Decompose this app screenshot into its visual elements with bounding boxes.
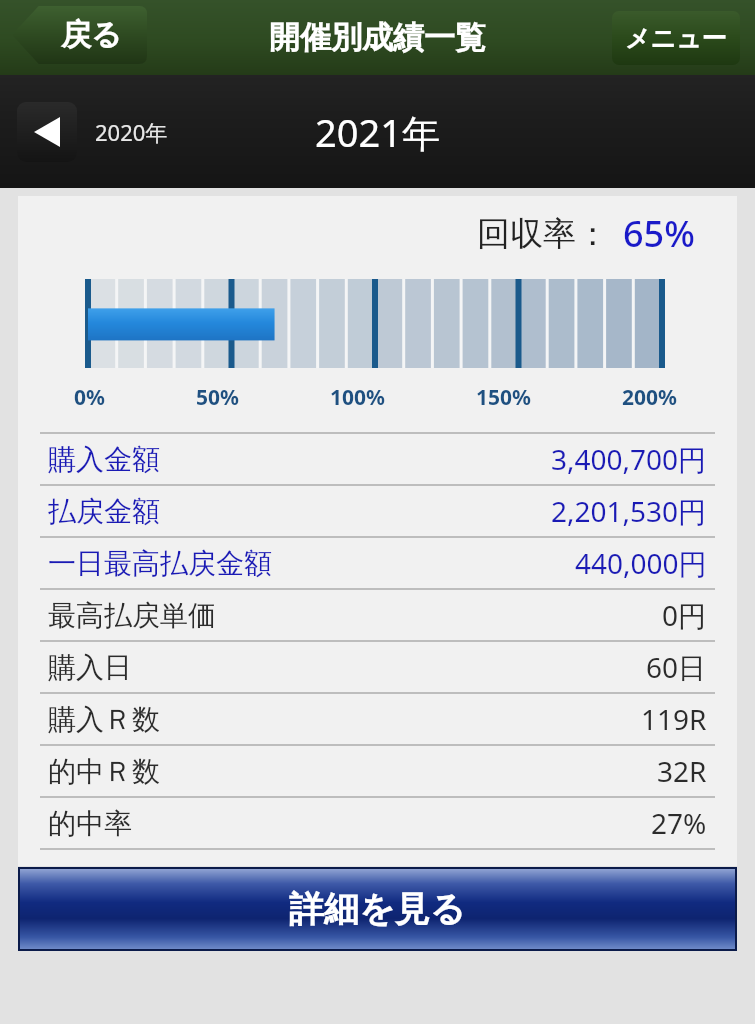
button[interactable]: 払戻金額	[18, 486, 737, 536]
staticText: 150%	[476, 383, 531, 412]
button[interactable]: 戻る	[12, 6, 147, 64]
button[interactable]: メニュー	[612, 11, 740, 65]
button[interactable]: 最高払戻単価	[18, 590, 737, 640]
button[interactable]: 購入金額	[18, 434, 737, 484]
staticText: 65%	[623, 209, 695, 258]
staticText: 開催別成績一覧	[269, 18, 486, 57]
staticText: 購入日	[48, 650, 132, 685]
staticText: 60日	[646, 648, 707, 686]
staticText: 2021年	[315, 106, 440, 158]
staticText: 3,400,700円	[551, 440, 707, 478]
staticText: 2,201,530円	[551, 492, 707, 530]
button[interactable]: 的中Ｒ数	[18, 746, 737, 796]
button[interactable]: 的中率	[18, 798, 737, 848]
button[interactable]: 購入Ｒ数	[18, 694, 737, 744]
staticText: 最高払戻単価	[48, 598, 216, 633]
staticText: 50%	[196, 383, 239, 412]
staticText: 購入金額	[48, 442, 160, 477]
staticText: 的中率	[48, 806, 132, 841]
staticText: 0円	[662, 596, 707, 634]
staticText: 一日最高払戻金額	[48, 546, 272, 581]
staticText: 200%	[622, 383, 677, 412]
staticText: 詳細を見る	[289, 887, 466, 931]
staticText: 2020年	[95, 117, 168, 147]
button[interactable]: 詳細を見る	[20, 869, 735, 949]
button[interactable]: 購入日	[18, 642, 737, 692]
button[interactable]: 一日最高払戻金額	[18, 538, 737, 588]
staticText: 的中Ｒ数	[48, 754, 160, 789]
staticText: メニュー	[625, 23, 727, 54]
staticText: 119R	[641, 700, 707, 738]
staticText: 払戻金額	[48, 494, 160, 529]
staticText: 32R	[657, 752, 707, 790]
staticText: 購入Ｒ数	[48, 702, 160, 737]
staticText: 27%	[651, 804, 707, 842]
staticText: 戻る	[61, 16, 122, 54]
staticText: 100%	[330, 383, 385, 412]
staticText: 回収率：	[477, 213, 609, 255]
staticText: 440,000円	[575, 544, 707, 582]
button[interactable]: 前の年 2020年	[17, 102, 168, 162]
staticText: 0%	[74, 383, 105, 412]
